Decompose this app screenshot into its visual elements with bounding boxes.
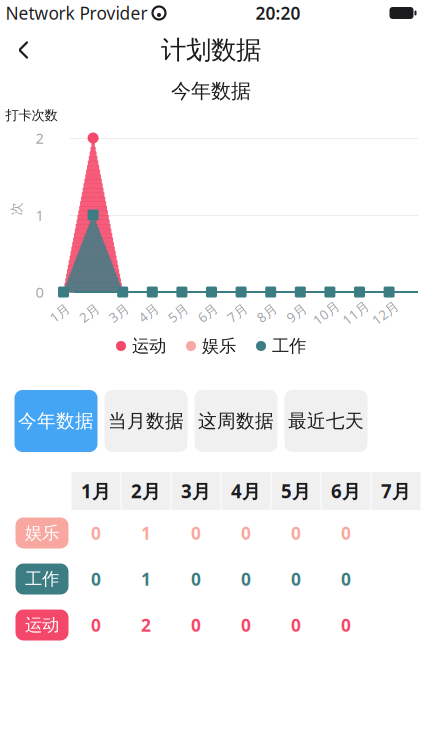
staticText: 0 xyxy=(291,567,301,590)
staticText: 1 xyxy=(35,205,43,225)
staticText: 今年数据 xyxy=(171,79,251,103)
button[interactable]: 当月数据 xyxy=(104,390,187,452)
staticText: Network Provider xyxy=(5,1,147,24)
button[interactable]: 今年数据 xyxy=(14,390,97,452)
staticText: 0 xyxy=(91,613,101,636)
staticText: 4月 xyxy=(138,304,159,322)
staticText: 1月 xyxy=(49,304,70,322)
staticText: 0 xyxy=(35,282,43,302)
staticText: 计划数据 xyxy=(161,34,261,65)
staticText: 2月 xyxy=(79,304,100,322)
staticText: 0 xyxy=(341,567,351,590)
staticText: 当月数据 xyxy=(108,409,184,432)
staticText: 2 xyxy=(141,613,151,636)
staticText: 运动 xyxy=(25,614,59,636)
staticText: 4月 xyxy=(231,479,261,503)
staticText: 6月 xyxy=(331,479,361,503)
staticText: 0 xyxy=(191,613,201,636)
staticText: 这周数据 xyxy=(198,409,274,432)
staticText: 1 xyxy=(141,521,151,544)
staticText: 0 xyxy=(341,521,351,544)
staticText: 0 xyxy=(241,521,251,544)
staticText: 8月 xyxy=(256,304,277,322)
staticText: 5月 xyxy=(167,304,188,322)
staticText: 打卡次数 xyxy=(5,107,57,123)
staticText: 运动 xyxy=(132,335,166,357)
staticText xyxy=(147,3,151,23)
button[interactable]: Back xyxy=(1,28,45,72)
staticText: 0 xyxy=(91,521,101,544)
staticText: 7月 xyxy=(227,304,248,322)
staticText: 1月 xyxy=(81,479,111,503)
staticText: 0 xyxy=(291,521,301,544)
staticText: 娱乐 xyxy=(202,335,236,357)
staticText: 11月 xyxy=(341,304,370,322)
staticText: 20:20 xyxy=(255,1,300,24)
staticText: 0 xyxy=(291,613,301,636)
staticText: 0 xyxy=(241,567,251,590)
staticText: 6月 xyxy=(197,304,218,322)
staticText: 2 xyxy=(35,128,43,148)
staticText: 0 xyxy=(191,567,201,590)
staticText: 3月 xyxy=(108,304,129,322)
staticText: 次 xyxy=(10,201,23,217)
staticText: 3月 xyxy=(181,479,211,503)
staticText: 1 xyxy=(141,567,151,590)
staticText: 0 xyxy=(91,567,101,590)
staticText: 工作 xyxy=(272,335,306,357)
button[interactable]: 最近七天 xyxy=(284,390,367,452)
staticText: 最近七天 xyxy=(288,409,364,432)
staticText: 工作 xyxy=(25,568,59,590)
staticText: 0 xyxy=(341,613,351,636)
staticText: 0 xyxy=(241,613,251,636)
staticText: 5月 xyxy=(281,479,311,503)
staticText: 10月 xyxy=(311,304,340,322)
staticText: 今年数据 xyxy=(18,409,94,432)
button[interactable]: 这周数据 xyxy=(194,390,277,452)
staticText: 2月 xyxy=(131,479,161,503)
staticText: 7月 xyxy=(381,479,411,503)
staticText: 12月 xyxy=(371,304,400,322)
staticText: 9月 xyxy=(286,304,307,322)
staticText: 0 xyxy=(191,521,201,544)
staticText: 娱乐 xyxy=(25,522,59,544)
